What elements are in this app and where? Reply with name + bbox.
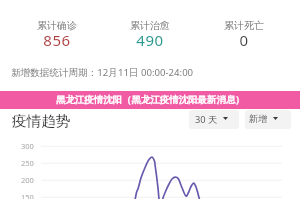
staticText: 累计确诊 bbox=[17, 19, 97, 32]
staticText: 疫情趋势 bbox=[12, 112, 71, 130]
button[interactable]: 黑龙江疫情沈阳（黑龙江疫情沈阳最新消息） bbox=[0, 91, 300, 109]
staticText: 150 bbox=[21, 192, 34, 199]
button[interactable]: 累计治愈 bbox=[110, 16, 190, 48]
staticText: 30 天 bbox=[195, 113, 218, 126]
staticText: 黑龙江疫情沈阳（黑龙江疫情沈阳最新消息） bbox=[56, 94, 245, 106]
staticText: 累计治愈 bbox=[110, 19, 190, 32]
button[interactable]: 累计确诊 bbox=[17, 16, 97, 48]
staticText: 300 bbox=[21, 141, 34, 151]
staticText: 累计死亡 bbox=[204, 19, 284, 32]
button[interactable]: 新增 bbox=[245, 110, 291, 129]
staticText: 200 bbox=[21, 175, 34, 185]
button[interactable]: 累计死亡 bbox=[204, 16, 284, 48]
staticText: 856 bbox=[17, 30, 97, 50]
staticText: 0 bbox=[204, 30, 284, 50]
staticText: 490 bbox=[110, 30, 190, 50]
button[interactable]: 30 天 bbox=[189, 110, 239, 129]
staticText: 新增数据统计周期：12月11日 00:00-24:00 bbox=[11, 66, 194, 79]
staticText: 250 bbox=[21, 158, 34, 168]
staticText: 新增 bbox=[249, 113, 268, 125]
